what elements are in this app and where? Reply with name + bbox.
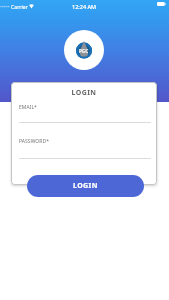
staticText: EMAIL* — [19, 104, 37, 111]
button[interactable]: LOGIN — [27, 175, 144, 197]
button[interactable]: EMAIL* — [19, 102, 151, 123]
staticText: PGC — [79, 48, 89, 54]
staticText: PASSWORD* — [19, 138, 49, 145]
staticText: 12:24 AM — [72, 3, 97, 10]
staticText: LOGIN — [11, 88, 157, 98]
button[interactable]: PASSWORD* — [19, 136, 151, 159]
staticText: LOGIN — [73, 181, 98, 191]
staticText: Carrier — [11, 3, 28, 10]
